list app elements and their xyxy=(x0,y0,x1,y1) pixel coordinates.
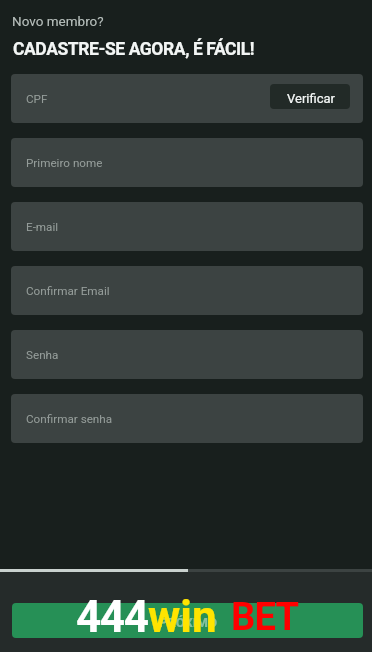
staticText: CPF xyxy=(26,92,48,106)
button[interactable]: Senha xyxy=(11,330,363,379)
staticText: Confirmar senha xyxy=(26,412,113,426)
staticText: Confirmar Email xyxy=(26,284,110,298)
staticText: E-mail xyxy=(26,220,59,234)
button[interactable]: Confirmar Email xyxy=(11,266,363,315)
button[interactable]: Primeiro nome xyxy=(11,138,363,187)
staticText: Verificar xyxy=(287,91,335,106)
staticText: PRÓXIMO xyxy=(159,615,217,630)
button[interactable]: CPF xyxy=(11,74,363,123)
staticText: Primeiro nome xyxy=(26,156,103,170)
button[interactable]: E-mail xyxy=(11,202,363,251)
staticText: 444 xyxy=(76,591,148,643)
staticText: BET xyxy=(231,595,299,640)
staticText: Novo membro? xyxy=(12,13,104,29)
button[interactable]: Verificar xyxy=(270,84,350,109)
staticText: CADASTRE-SE AGORA, É FÁCIL! xyxy=(13,39,255,60)
staticText: win xyxy=(148,591,217,643)
button[interactable]: PRÓXIMO xyxy=(12,603,363,638)
button[interactable]: Confirmar senha xyxy=(11,394,363,443)
staticText: Senha xyxy=(26,348,59,362)
